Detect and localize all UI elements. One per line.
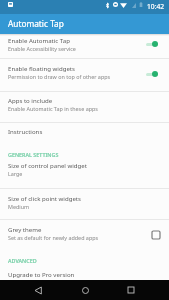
button[interactable]: Size of control panel widget: [0, 158, 169, 188]
staticText: Set as default for newly added apps: [8, 234, 99, 241]
staticText: Upgrade to Pro version: [8, 270, 75, 278]
button[interactable]: Apps to include: [0, 91, 169, 122]
staticText: Size of control panel widget: [8, 161, 88, 169]
staticText: GENERAL SETTINGS: [8, 151, 59, 158]
staticText: ADVANCED: [8, 257, 37, 264]
button[interactable]: Upgrade to Pro version: [0, 266, 169, 280]
button[interactable]: Grey theme: [0, 219, 169, 249]
button[interactable]: Instructions: [0, 122, 169, 146]
staticText: Enable Automatic Tap: [8, 36, 70, 44]
staticText: Enable floating widgets: [8, 64, 75, 72]
button[interactable]: Size of click point widgets: [0, 188, 169, 219]
button[interactable]: Recents: [124, 283, 138, 297]
staticText: Medium: [8, 203, 30, 210]
staticText: Apps to include: [8, 96, 53, 104]
staticText: Size of click point widgets: [8, 194, 81, 202]
staticText: Automatic Tap: [8, 18, 64, 29]
staticText: Grey theme: [8, 225, 42, 233]
button[interactable]: Enable floating widgets: [0, 58, 169, 91]
button[interactable]: Back: [31, 283, 45, 297]
staticText: Permission to draw on top of other apps: [8, 73, 111, 80]
staticText: Enable Automatic Tap in these apps: [8, 105, 98, 112]
button[interactable]: Enable Automatic Tap: [0, 33, 169, 58]
staticText: Instructions: [8, 127, 43, 135]
staticText: 10:42: [147, 2, 165, 11]
staticText: Large: [8, 170, 23, 177]
button[interactable]: Home: [78, 283, 92, 297]
staticText: Enable Accessibility service: [8, 45, 76, 52]
